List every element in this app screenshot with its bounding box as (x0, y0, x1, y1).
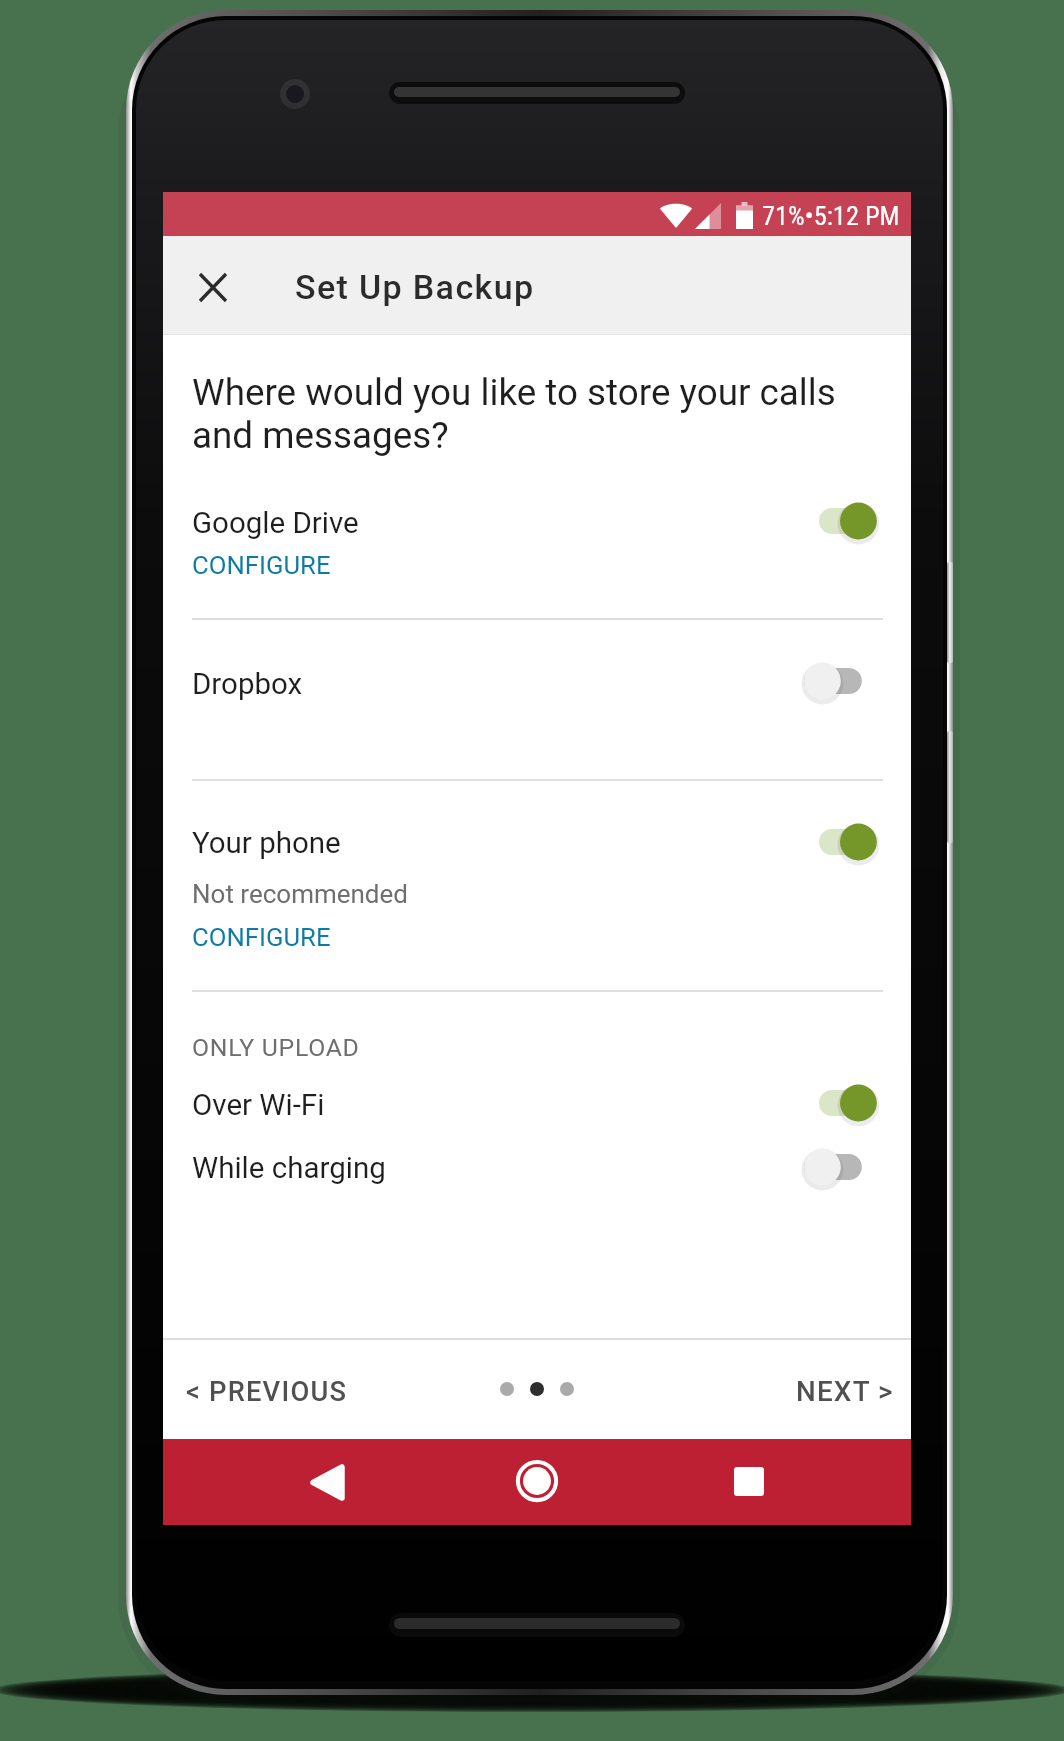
button[interactable]: Home (495, 1439, 579, 1523)
staticText: ONLY UPLOAD (192, 1033, 360, 1062)
button[interactable]: Google Drive, backup destination, on (163, 500, 911, 619)
staticText: 71%•5:12 PM (762, 201, 900, 232)
button[interactable]: Only upload while charging, off (801, 1143, 865, 1191)
staticText: Where would you like to store your calls… (192, 371, 854, 457)
staticText: Set Up Backup (295, 267, 535, 307)
button[interactable]: Google Drive backup, on (816, 497, 880, 545)
staticText: CONFIGURE (192, 550, 331, 580)
button[interactable]: Recents (707, 1439, 791, 1523)
staticText: NEXT > (796, 1375, 894, 1408)
staticText: CONFIGURE (192, 922, 331, 952)
button[interactable]: Only upload over Wi-Fi, on (816, 1079, 880, 1127)
button[interactable]: Only upload while charging, off (163, 1140, 911, 1198)
button[interactable]: Your phone, backup destination, on (163, 779, 911, 990)
staticText: < PREVIOUS (186, 1376, 348, 1408)
staticText: While charging (192, 1151, 386, 1186)
button[interactable]: Back (285, 1440, 369, 1524)
button[interactable]: CONFIGURE (192, 922, 331, 952)
button[interactable]: Only upload over Wi-Fi, on (163, 1085, 911, 1140)
button[interactable]: Dropbox backup, off (801, 657, 865, 705)
staticText: Over Wi-Fi (192, 1088, 325, 1123)
button[interactable]: NEXT > (790, 1369, 900, 1414)
staticText: Google Drive (192, 506, 359, 541)
button[interactable]: Your phone backup, on (816, 818, 880, 866)
button[interactable]: CONFIGURE (192, 550, 331, 580)
button[interactable]: Dropbox, backup destination, off (163, 619, 911, 779)
staticText: Dropbox (192, 667, 303, 702)
button[interactable]: < PREVIOUS (180, 1370, 354, 1414)
button[interactable]: Close (188, 262, 238, 312)
staticText: Not recommended (192, 879, 408, 909)
staticText: Your phone (192, 826, 341, 861)
